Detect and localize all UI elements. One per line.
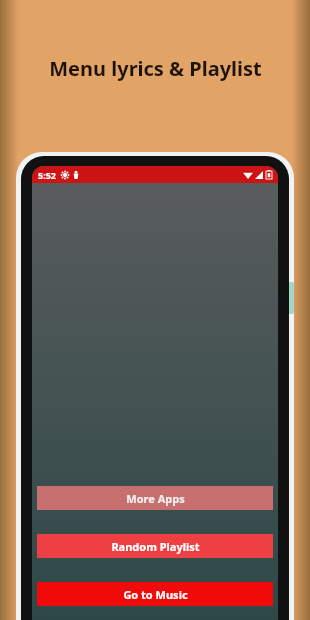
staticText: More Apps: [126, 491, 185, 506]
staticText: 5:52: [38, 169, 56, 181]
button[interactable]: More Apps: [37, 486, 273, 510]
staticText: Menu lyrics & Playlist: [49, 55, 262, 82]
button[interactable]: Random Playlist: [37, 534, 273, 558]
button[interactable]: Go to Music: [37, 582, 273, 606]
staticText: Go to Music: [123, 587, 188, 602]
staticText: Random Playlist: [111, 539, 200, 554]
